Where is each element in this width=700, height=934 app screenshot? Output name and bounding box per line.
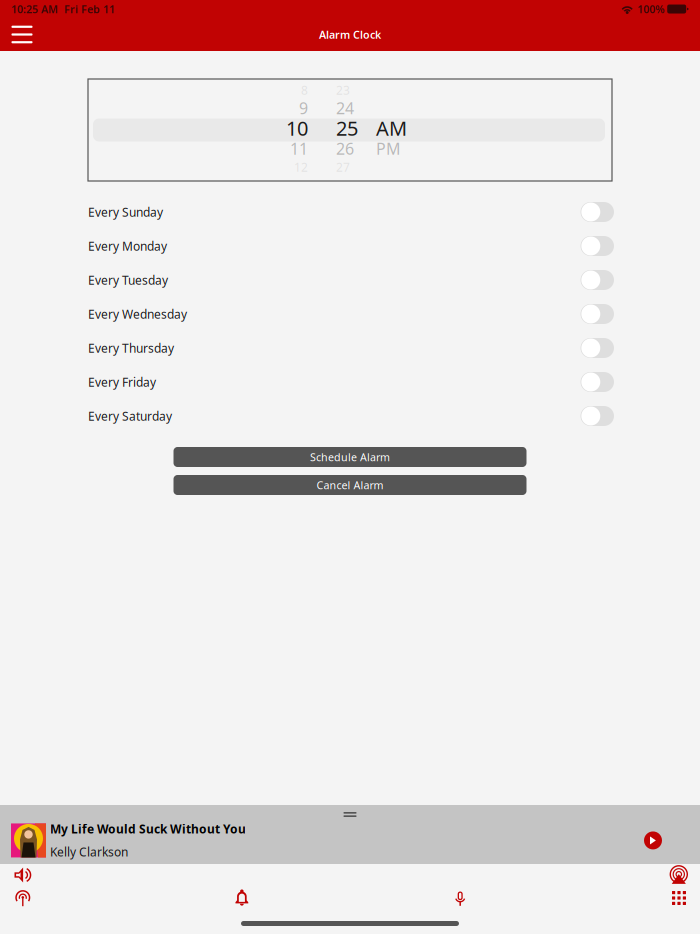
button[interactable]: Every Thursday xyxy=(86,331,614,365)
staticText: 27 xyxy=(336,159,350,175)
staticText: 24 xyxy=(336,97,354,119)
staticText: 11 xyxy=(290,138,308,159)
staticText: My Life Would Suck Without You xyxy=(50,821,246,837)
staticText: Every Sunday xyxy=(88,204,163,220)
button[interactable]: More xyxy=(658,888,700,908)
button[interactable]: Cancel Alarm xyxy=(173,475,526,495)
button[interactable]: Every Wednesday xyxy=(86,297,614,331)
button[interactable]: Every Friday xyxy=(86,365,614,399)
button[interactable]: Schedule Alarm xyxy=(173,447,526,467)
button[interactable]: Voice xyxy=(439,888,481,908)
staticText: Every Wednesday xyxy=(88,306,187,322)
button[interactable]: AirPlay xyxy=(658,865,700,885)
staticText: 10 xyxy=(286,115,308,141)
button[interactable]: Volume xyxy=(2,865,44,885)
staticText: 100% xyxy=(634,2,667,16)
button[interactable]: Every Saturday xyxy=(86,399,614,433)
staticText: 23 xyxy=(336,82,350,98)
staticText: Cancel Alarm xyxy=(316,478,383,492)
staticText: Every Saturday xyxy=(88,408,172,424)
staticText: Every Friday xyxy=(88,374,156,390)
button[interactable]: Every Tuesday xyxy=(86,263,614,297)
staticText: Schedule Alarm xyxy=(310,450,390,464)
staticText: Every Thursday xyxy=(88,340,174,356)
button[interactable]: Every Monday xyxy=(86,229,614,263)
button[interactable]: Play xyxy=(644,831,662,849)
staticText: 25 xyxy=(336,115,358,141)
staticText: Every Monday xyxy=(88,238,167,254)
staticText: Every Tuesday xyxy=(88,272,168,288)
staticText: 9 xyxy=(299,97,308,119)
button[interactable]: Menu xyxy=(7,21,37,47)
button[interactable]: Broadcast xyxy=(2,888,44,908)
staticText: Alarm Clock xyxy=(319,27,381,42)
button[interactable]: Alarms xyxy=(221,888,263,908)
staticText: Kelly Clarkson xyxy=(50,844,128,860)
staticText: 8 xyxy=(301,82,308,98)
staticText: PM xyxy=(376,138,401,159)
staticText: AM xyxy=(376,115,407,141)
staticText: 12 xyxy=(294,159,308,175)
button[interactable]: Every Sunday xyxy=(86,195,614,229)
staticText: 10:25 AM xyxy=(11,2,58,16)
staticText: 26 xyxy=(336,138,354,159)
staticText: Fri Feb 11 xyxy=(58,2,115,16)
